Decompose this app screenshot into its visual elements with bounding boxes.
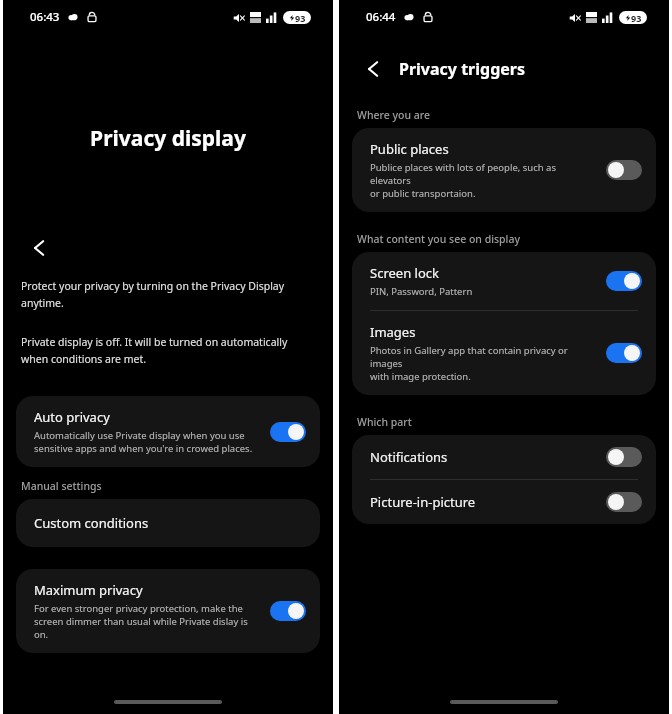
staticText: Auto privacy <box>34 408 110 426</box>
button[interactable]: Back <box>361 56 387 82</box>
staticText: Custom conditions <box>34 514 149 532</box>
button[interactable]: Toggle off <box>606 447 642 467</box>
button[interactable]: Auto privacy <box>16 396 320 467</box>
staticText: Screen lock <box>370 264 439 282</box>
staticText: 93 <box>631 12 642 24</box>
staticText: Notifications <box>370 448 448 466</box>
button[interactable]: Back <box>27 235 53 261</box>
staticText: Picture-in-picture <box>370 493 476 511</box>
staticText: For even stronger privacy protection, ma… <box>34 602 260 641</box>
staticText: Which part <box>357 415 412 429</box>
staticText: What content you see on display <box>357 232 520 246</box>
button[interactable]: Maximum privacy <box>16 569 320 653</box>
staticText: Protect your privacy by turning on the P… <box>21 279 285 310</box>
staticText: Privacy display <box>3 124 333 153</box>
staticText: Maximum privacy <box>34 581 143 599</box>
button[interactable]: Screen lock <box>352 252 656 310</box>
button[interactable]: Public places <box>352 128 656 212</box>
staticText: Manual settings <box>21 479 102 493</box>
button[interactable]: Toggle on <box>270 422 306 442</box>
staticText: 06:44 <box>366 9 396 25</box>
button[interactable]: Notifications <box>352 435 656 479</box>
staticText: Public places <box>370 140 449 158</box>
button[interactable]: Toggle on <box>606 343 642 363</box>
staticText: Where you are <box>357 108 431 122</box>
staticText: Privacy triggers <box>399 58 525 80</box>
staticText: Private display is off. It will be turne… <box>21 335 288 366</box>
button[interactable]: Toggle off <box>606 492 642 512</box>
button[interactable]: Picture-in-picture <box>352 480 656 524</box>
staticText: Photos in Gallery app that contain priva… <box>370 344 596 383</box>
staticText: Images <box>370 323 416 341</box>
button[interactable]: Images <box>352 311 656 395</box>
staticText: Publice places with lots of people, such… <box>370 161 596 200</box>
button[interactable]: Toggle off <box>606 160 642 180</box>
button[interactable]: Toggle on <box>270 601 306 621</box>
staticText: 06:43 <box>30 9 60 25</box>
button[interactable]: Toggle on <box>606 271 642 291</box>
staticText: Automatically use Private display when y… <box>34 429 253 455</box>
button[interactable]: Custom conditions <box>16 499 320 547</box>
staticText: PIN, Password, Pattern <box>370 285 473 298</box>
staticText: 93 <box>295 12 306 24</box>
